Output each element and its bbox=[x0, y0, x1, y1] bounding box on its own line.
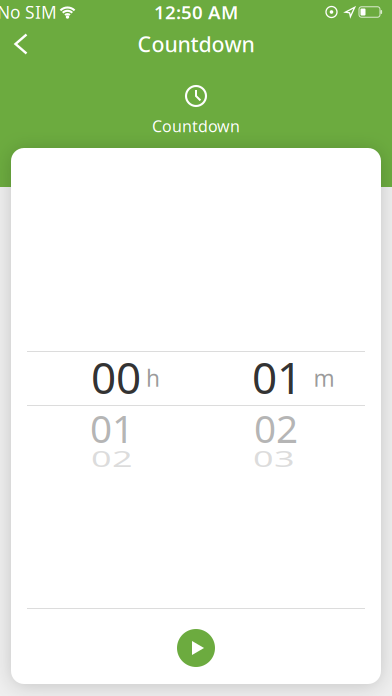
button[interactable]: Start countdown bbox=[177, 629, 215, 667]
staticText: 00 bbox=[91, 348, 141, 406]
staticText: 01 bbox=[90, 402, 134, 454]
staticText: 03 bbox=[253, 435, 295, 483]
staticText: Countdown bbox=[137, 30, 254, 58]
staticText: m bbox=[313, 363, 334, 393]
staticText: No SIM bbox=[0, 0, 57, 23]
staticText: 02 bbox=[254, 402, 298, 454]
staticText: h bbox=[146, 363, 160, 393]
staticText: 01 bbox=[252, 348, 302, 406]
staticText: 02 bbox=[91, 435, 133, 483]
button[interactable]: Back bbox=[5, 24, 36, 63]
staticText: 12:50 AM bbox=[154, 0, 238, 24]
staticText: Countdown bbox=[152, 115, 240, 137]
